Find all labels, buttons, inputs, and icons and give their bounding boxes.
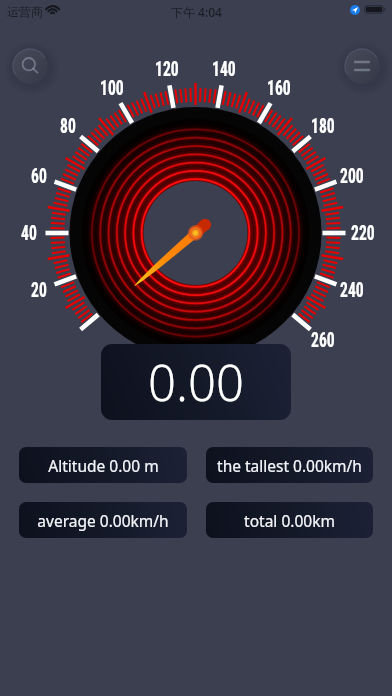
staticText: 200: [340, 165, 364, 188]
staticText: 60: [31, 165, 47, 188]
staticText: 160: [267, 77, 291, 100]
staticText: 0.00: [148, 349, 244, 416]
button[interactable]: 0.00: [101, 344, 291, 420]
staticText: 100: [100, 77, 124, 100]
staticText: 220: [351, 222, 375, 245]
staticText: the tallest 0.00km/h: [217, 455, 362, 476]
staticText: 下午 4:04: [171, 4, 222, 20]
staticText: 40: [21, 222, 37, 245]
staticText: 80: [60, 115, 76, 138]
button[interactable]: total 0.00km: [206, 502, 373, 538]
button[interactable]: Menu: [338, 42, 386, 90]
staticText: 120: [155, 58, 179, 81]
staticText: 240: [340, 279, 364, 302]
staticText: total 0.00km: [244, 510, 335, 531]
staticText: 180: [311, 115, 335, 138]
staticText: 260: [311, 329, 335, 352]
button[interactable]: the tallest 0.00km/h: [206, 447, 373, 483]
staticText: average 0.00km/h: [37, 510, 169, 531]
staticText: 20: [31, 279, 47, 302]
button[interactable]: average 0.00km/h: [19, 502, 187, 538]
staticText: Altitude 0.00 m: [48, 455, 159, 476]
button[interactable]: Search: [6, 42, 54, 90]
staticText: 运营商: [7, 4, 43, 19]
button[interactable]: Altitude 0.00 m: [19, 447, 187, 483]
staticText: 140: [212, 58, 236, 81]
